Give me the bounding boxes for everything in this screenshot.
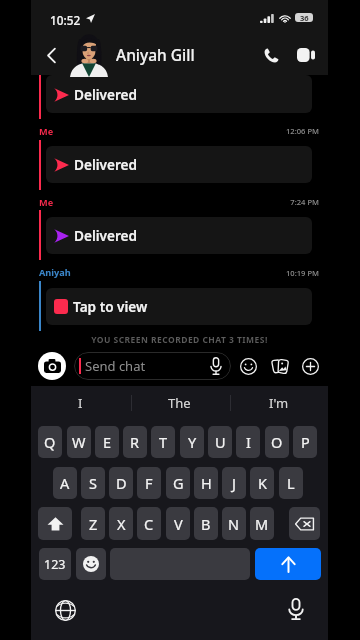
- button[interactable]: F: [137, 467, 161, 499]
- button[interactable]: K: [250, 467, 274, 499]
- staticText: P: [301, 432, 310, 452]
- staticText: R: [130, 432, 140, 452]
- staticText: YOU SCREEN RECORDED CHAT 3 TIMES!: [31, 334, 328, 346]
- staticText: 36: [300, 13, 309, 22]
- button[interactable]: Backspace: [289, 507, 320, 540]
- button[interactable]: Delivered: [46, 217, 312, 254]
- staticText: C: [144, 514, 154, 534]
- staticText: Aniyah Gill: [116, 44, 195, 65]
- staticText: M: [255, 514, 269, 534]
- button[interactable]: Video call: [289, 38, 323, 72]
- staticText: Z: [89, 514, 98, 534]
- button[interactable]: Send: [255, 548, 321, 580]
- button[interactable]: Call: [254, 38, 288, 72]
- button[interactable]: Emoji: [239, 357, 258, 376]
- staticText: Aniyah: [39, 266, 71, 279]
- staticText: Send chat: [85, 357, 146, 375]
- staticText: B: [201, 514, 211, 534]
- staticText: Me: [39, 196, 54, 209]
- button[interactable]: The: [130, 388, 229, 418]
- button[interactable]: T: [151, 426, 175, 458]
- button[interactable]: N: [222, 507, 246, 540]
- staticText: L: [287, 473, 295, 493]
- button[interactable]: D: [109, 467, 133, 499]
- staticText: D: [116, 473, 127, 493]
- button[interactable]: W: [67, 426, 91, 458]
- button[interactable]: L: [279, 467, 303, 499]
- button[interactable]: Emoji: [76, 548, 106, 580]
- button[interactable]: Change language: [54, 599, 76, 621]
- button[interactable]: Camera: [38, 352, 66, 380]
- staticText: 12:06 PM: [31, 126, 319, 136]
- staticText: Tap to view: [73, 297, 148, 316]
- button[interactable]: X: [109, 507, 133, 540]
- staticText: S: [89, 473, 97, 493]
- staticText: W: [72, 432, 86, 452]
- staticText: 123: [44, 556, 66, 573]
- staticText: O: [271, 432, 283, 452]
- staticText: 10:52: [50, 12, 81, 28]
- button[interactable]: Delivered: [46, 146, 312, 183]
- button[interactable]: I'm: [229, 388, 328, 418]
- staticText: U: [215, 432, 226, 452]
- button[interactable]: H: [194, 467, 218, 499]
- button[interactable]: J: [222, 467, 246, 499]
- button[interactable]: R: [123, 426, 147, 458]
- button[interactable]: E: [95, 426, 119, 458]
- staticText: Q: [44, 432, 56, 452]
- staticText: Delivered: [74, 155, 138, 174]
- button[interactable]: Q: [38, 426, 62, 458]
- staticText: The: [168, 394, 191, 412]
- button[interactable]: Z: [81, 507, 105, 540]
- button[interactable]: C: [137, 507, 161, 540]
- button[interactable]: I: [31, 388, 130, 418]
- staticText: E: [103, 432, 112, 452]
- button[interactable]: Stickers: [270, 357, 289, 376]
- staticText: I: [78, 394, 83, 412]
- staticText: J: [232, 473, 236, 493]
- staticText: V: [174, 514, 183, 534]
- staticText: G: [173, 473, 184, 493]
- button[interactable]: I: [236, 426, 260, 458]
- button[interactable]: Tap to view: [46, 288, 312, 325]
- button[interactable]: Back: [33, 37, 69, 73]
- button[interactable]: P: [293, 426, 317, 458]
- button[interactable]: M: [250, 507, 274, 540]
- staticText: Me: [39, 125, 54, 138]
- button[interactable]: G: [166, 467, 190, 499]
- staticText: Delivered: [74, 85, 138, 104]
- staticText: Delivered: [74, 226, 138, 245]
- button[interactable]: Voice input: [285, 598, 307, 620]
- button[interactable]: Send chat: [74, 352, 231, 380]
- button[interactable]: V: [166, 507, 190, 540]
- button[interactable]: S: [81, 467, 105, 499]
- button[interactable]: More: [301, 357, 320, 376]
- staticText: A: [60, 473, 70, 493]
- button[interactable]: A: [53, 467, 77, 499]
- staticText: Y: [188, 432, 197, 452]
- staticText: H: [201, 473, 212, 493]
- staticText: 7:24 PM: [31, 197, 319, 207]
- button[interactable]: Delivered: [46, 75, 312, 113]
- button[interactable]: B: [194, 507, 218, 540]
- button[interactable]: Shift: [38, 507, 72, 540]
- staticText: 10:19 PM: [31, 268, 319, 278]
- button[interactable]: 123: [39, 548, 71, 580]
- staticText: I: [246, 432, 251, 452]
- staticText: K: [258, 473, 267, 493]
- staticText: I'm: [269, 394, 289, 412]
- staticText: T: [159, 432, 168, 452]
- button[interactable]: O: [265, 426, 289, 458]
- staticText: N: [228, 514, 240, 534]
- staticText: X: [117, 514, 126, 534]
- button[interactable]: Y: [180, 426, 204, 458]
- staticText: F: [145, 473, 153, 493]
- button[interactable]: U: [208, 426, 232, 458]
